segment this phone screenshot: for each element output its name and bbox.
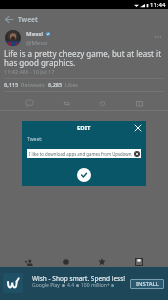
button[interactable]: Back xyxy=(1,12,15,26)
staticText: Retweets xyxy=(21,81,45,88)
button[interactable]: Share xyxy=(131,95,147,111)
button[interactable]: Add person xyxy=(21,254,37,270)
button[interactable]: Retweet xyxy=(58,95,74,111)
staticText: Wish - Shop smart. Spend less! xyxy=(32,274,126,283)
staticText: Messi xyxy=(26,30,44,38)
staticText: INSTALL xyxy=(136,280,159,288)
button[interactable]: Clear text xyxy=(134,151,140,157)
button[interactable]: More options xyxy=(152,31,164,43)
button[interactable]: Profile photo xyxy=(5,30,21,46)
staticText: 100 million+ xyxy=(81,282,110,289)
button[interactable]: Like xyxy=(94,95,110,111)
staticText: I like to download apps and games from U… xyxy=(29,151,134,157)
staticText: 11:42 AM - 10 Jul 17 xyxy=(4,68,55,75)
button[interactable]: I like to download apps and games from U… xyxy=(29,149,140,158)
button[interactable]: Favorites xyxy=(94,254,110,270)
staticText: EDIT xyxy=(77,124,91,132)
staticText: 6,285 xyxy=(48,81,63,88)
staticText: Tweet xyxy=(18,15,38,24)
staticText: Life is a pretty cheezy game, but at lea… xyxy=(4,48,166,69)
staticText: Google Play xyxy=(32,282,60,289)
staticText: Tweet: xyxy=(27,136,43,143)
button[interactable]: Moments xyxy=(58,254,74,270)
button[interactable]: INSTALL xyxy=(130,279,164,289)
staticText: 4.4 xyxy=(67,282,75,289)
staticText: Likes xyxy=(65,81,78,88)
staticText: 6,115 xyxy=(4,81,19,88)
button[interactable]: Confirm xyxy=(77,168,91,182)
button[interactable]: Reply xyxy=(21,95,37,111)
button[interactable]: Wish - Shop smart. Spend less! xyxy=(0,267,168,300)
staticText: 11:44 xyxy=(150,1,166,9)
button[interactable]: Close xyxy=(132,122,144,134)
staticText: @Messi xyxy=(26,39,48,47)
button[interactable]: Save xyxy=(131,254,147,270)
